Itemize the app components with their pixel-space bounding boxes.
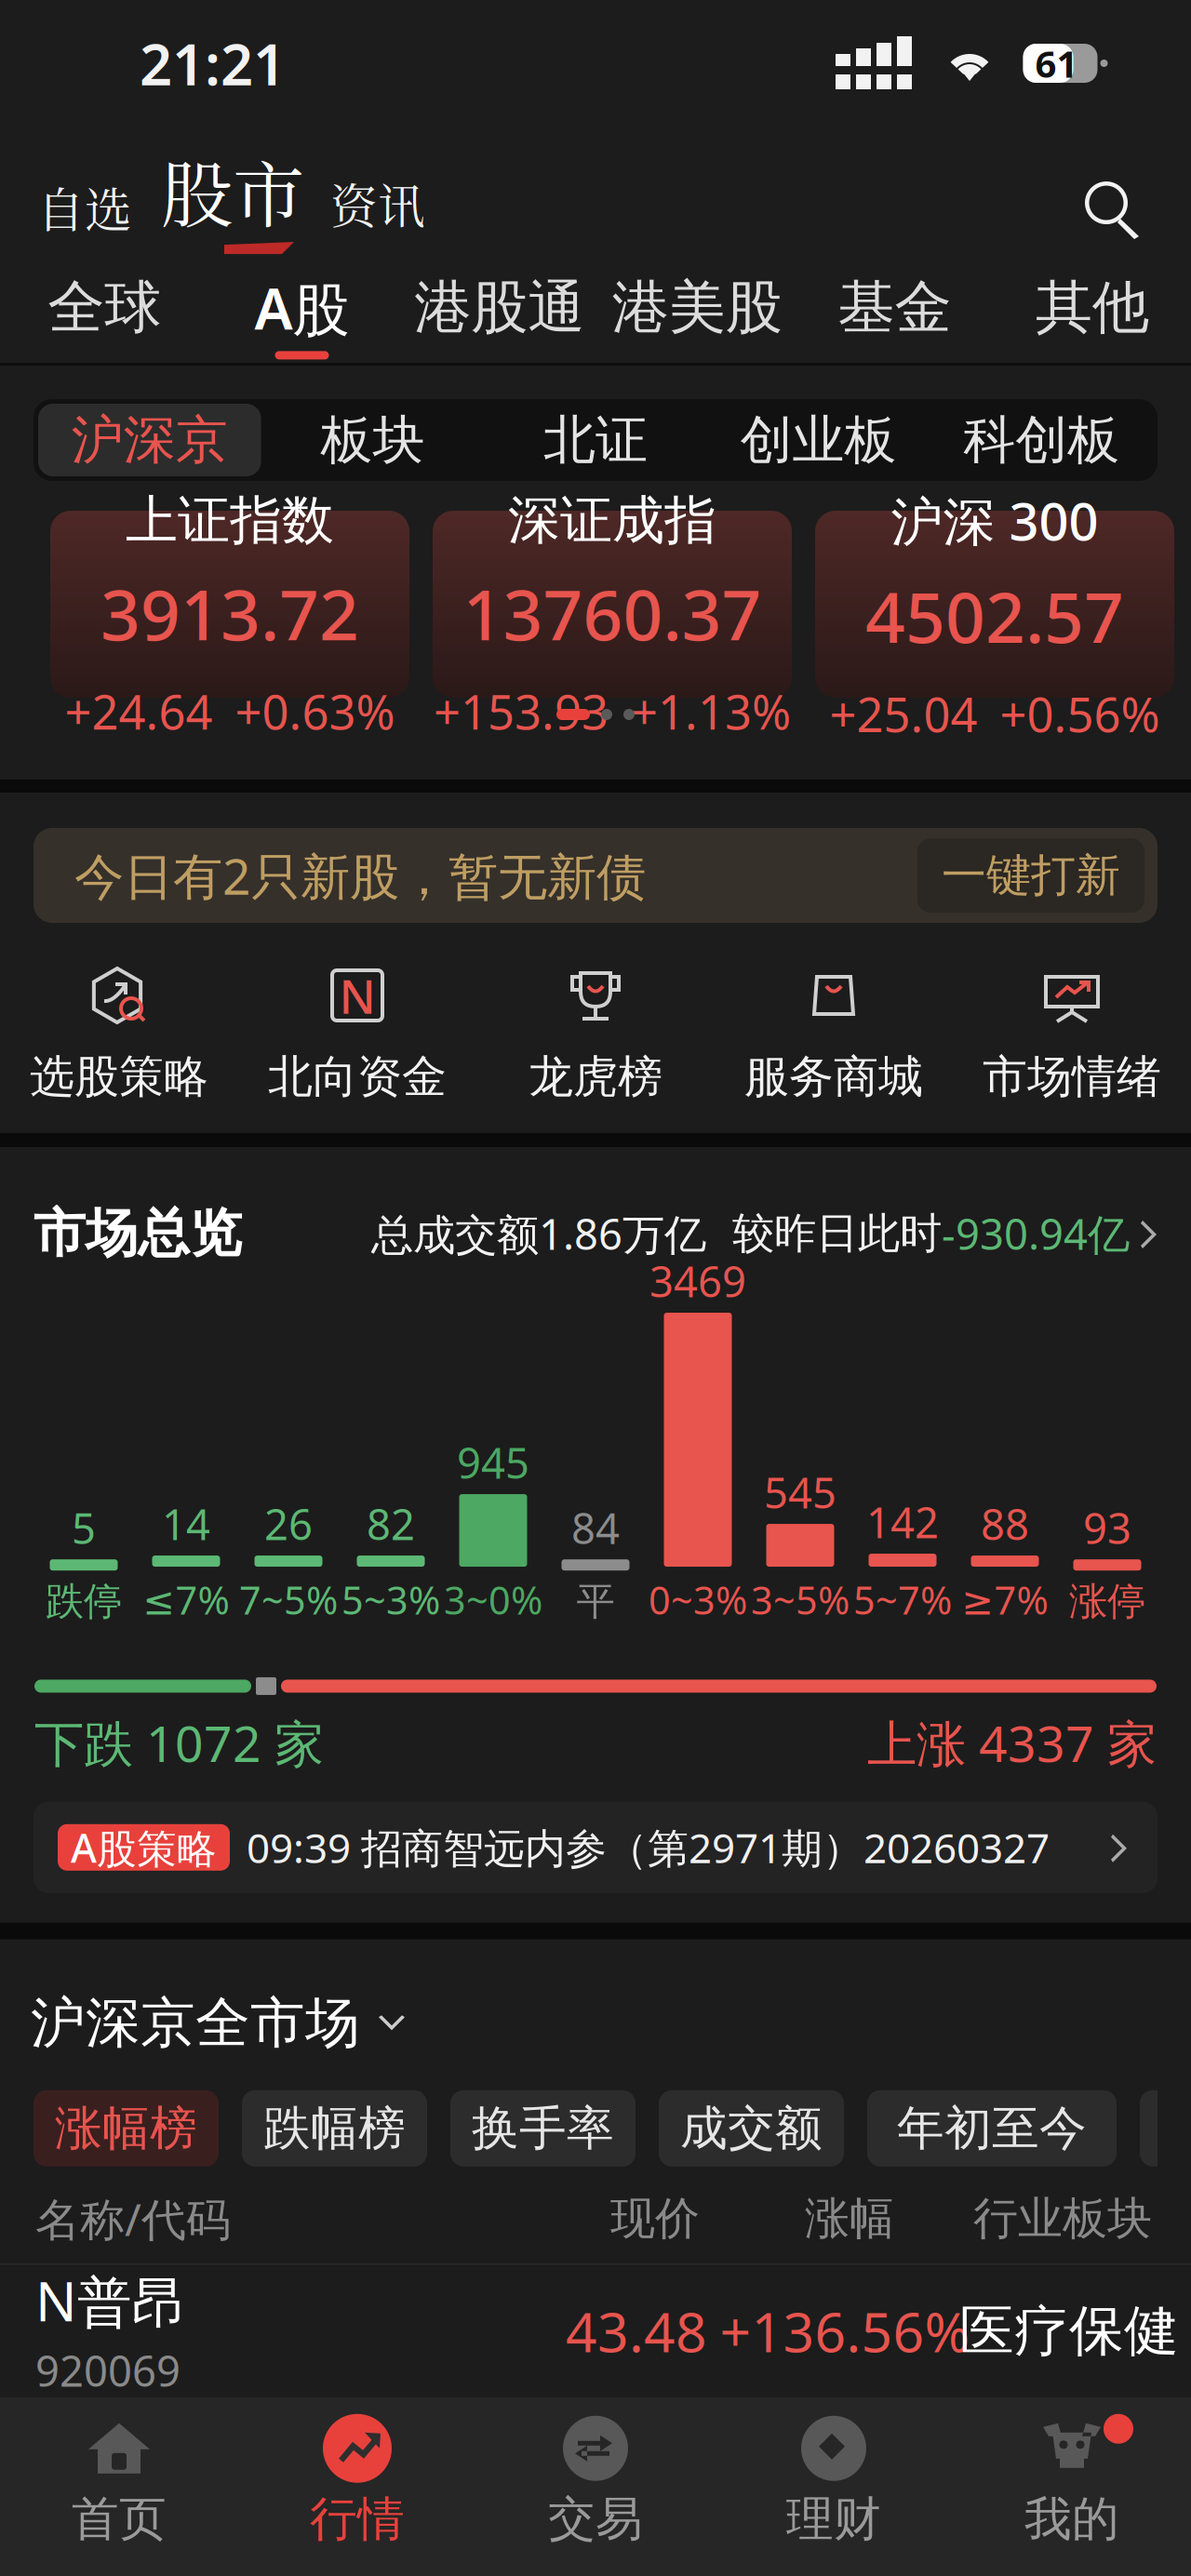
button[interactable]: 深证成指 (433, 511, 792, 698)
staticText: 行情 (310, 2490, 405, 2548)
button[interactable]: 上证指数 (50, 511, 409, 698)
staticText: 26 (264, 1496, 313, 1552)
staticText: 创业板 (740, 408, 897, 472)
button[interactable]: N普昂 (0, 2265, 1191, 2397)
button[interactable]: 北证 (484, 404, 707, 476)
staticText: 年初至今 (897, 2099, 1087, 2157)
button[interactable]: 科创板 (930, 404, 1153, 476)
staticText: 港股通 (414, 272, 585, 342)
button[interactable]: 市场总览 (0, 1185, 1191, 1282)
staticText: 09:39 招商智远内参（第2971期）20260327 (247, 1820, 1050, 1875)
staticText: 涨停 (1069, 1578, 1145, 1625)
button[interactable]: 成交额 (659, 2090, 844, 2166)
button[interactable]: 沪深京全市场 (0, 1973, 1191, 2073)
button[interactable]: A股 (203, 266, 401, 363)
staticText: 涨幅榜 (55, 2099, 197, 2157)
staticText: 3913.72 (100, 567, 359, 659)
staticText: 服务商城 (744, 1049, 923, 1104)
staticText: 股市 (161, 139, 304, 242)
button[interactable]: 首页 (0, 2414, 238, 2548)
staticText: 科创板 (963, 408, 1120, 472)
button[interactable]: A股策略 (0, 1776, 1191, 1923)
staticText: 总成交额1.86万亿 (371, 1206, 706, 1262)
staticText: ≥7% (962, 1574, 1048, 1625)
staticText: 首页 (72, 2490, 167, 2548)
staticText: 84 (571, 1500, 620, 1556)
button[interactable]: 港美股 (598, 266, 796, 363)
staticText: 沪深 300 (891, 486, 1098, 555)
staticText: 深证成指 (508, 488, 716, 552)
staticText: 平 (576, 1578, 615, 1625)
button[interactable]: N (238, 966, 476, 1104)
staticText: 920069 (35, 2342, 181, 2398)
button[interactable]: 换手率 (450, 2090, 636, 2166)
staticText: 涨幅 (805, 2191, 894, 2246)
staticText: 北证 (543, 408, 648, 472)
button[interactable]: 沪深 300 (815, 511, 1174, 698)
button[interactable]: 今日有2只新股，暂无新债 (0, 828, 1191, 923)
staticText: +1.13% (631, 680, 791, 742)
staticText: 跌幅榜 (263, 2099, 406, 2157)
button[interactable]: 股市 (132, 139, 330, 254)
staticText: 一键打新 (942, 848, 1120, 903)
staticText: A股策略 (71, 1821, 217, 1874)
staticText: 行业板块 (973, 2191, 1152, 2246)
button[interactable]: 理财 (715, 2414, 953, 2548)
button[interactable]: 服务商城 (715, 966, 953, 1104)
staticText: 今日有2只新股，暂无新债 (74, 842, 646, 908)
staticText: -930.94亿 (942, 1206, 1130, 1262)
button[interactable]: 龙虎榜 (476, 966, 715, 1104)
staticText: 545 (764, 1464, 836, 1520)
staticText: 7~5% (239, 1574, 338, 1625)
staticText: 较昨日此时 (706, 1208, 942, 1259)
button[interactable]: 交易 (476, 2414, 715, 2548)
staticText: 3469 (649, 1253, 746, 1309)
staticText: 北向资金 (268, 1049, 447, 1104)
staticText: ≤7% (143, 1574, 229, 1625)
button[interactable]: 跌幅榜 (242, 2090, 427, 2166)
button[interactable]: 其他 (993, 266, 1191, 363)
button[interactable]: 市场情绪 (953, 966, 1191, 1104)
button[interactable]: 港股通 (401, 266, 598, 363)
staticText: 3~5% (751, 1574, 850, 1625)
staticText: +0.56% (1000, 682, 1160, 745)
staticText: 945 (457, 1434, 529, 1490)
staticText: 142 (866, 1494, 939, 1550)
staticText: 港美股 (612, 272, 782, 342)
button[interactable]: 沪深京 (38, 404, 261, 476)
button[interactable]: 涨幅 (1140, 2090, 1191, 2166)
button[interactable]: 选股策略 (0, 966, 238, 1104)
staticText: N (339, 964, 375, 1027)
staticText: 自选 (37, 173, 132, 241)
staticText: 4502.57 (865, 570, 1124, 662)
button[interactable]: 板块 (261, 404, 484, 476)
button[interactable]: 我的 (953, 2414, 1191, 2548)
staticText: 5 (72, 1500, 96, 1556)
button[interactable]: 基金 (796, 266, 993, 363)
staticText: +0.63% (235, 680, 395, 742)
button[interactable]: 涨幅榜 (33, 2090, 219, 2166)
staticText: 跌停 (46, 1578, 122, 1625)
button[interactable]: 创业板 (707, 404, 930, 476)
staticText: 理财 (786, 2490, 881, 2548)
staticText: 市场总览 (33, 1202, 242, 1266)
staticText: 43.48 (566, 2295, 707, 2367)
staticText: +25.04 (830, 682, 977, 745)
button[interactable]: 全球 (6, 266, 203, 363)
button[interactable]: 年初至今 (867, 2090, 1117, 2166)
button[interactable]: 资讯 (330, 170, 425, 254)
button[interactable]: Search (1081, 178, 1191, 254)
staticText: +24.64 (65, 680, 213, 742)
staticText: 5~3% (341, 1574, 440, 1625)
staticText: 市场情绪 (983, 1049, 1161, 1104)
staticText: 3~0% (444, 1574, 542, 1625)
staticText: 5~7% (853, 1574, 952, 1625)
button[interactable]: 行情 (238, 2414, 476, 2548)
staticText: 沪深京全市场 (31, 1990, 360, 2057)
staticText: 上证指数 (126, 488, 334, 552)
staticText: 14 (162, 1496, 210, 1552)
button[interactable]: 自选 (0, 173, 132, 254)
staticText: +153.93 (434, 680, 609, 742)
staticText: 88 (981, 1496, 1029, 1552)
